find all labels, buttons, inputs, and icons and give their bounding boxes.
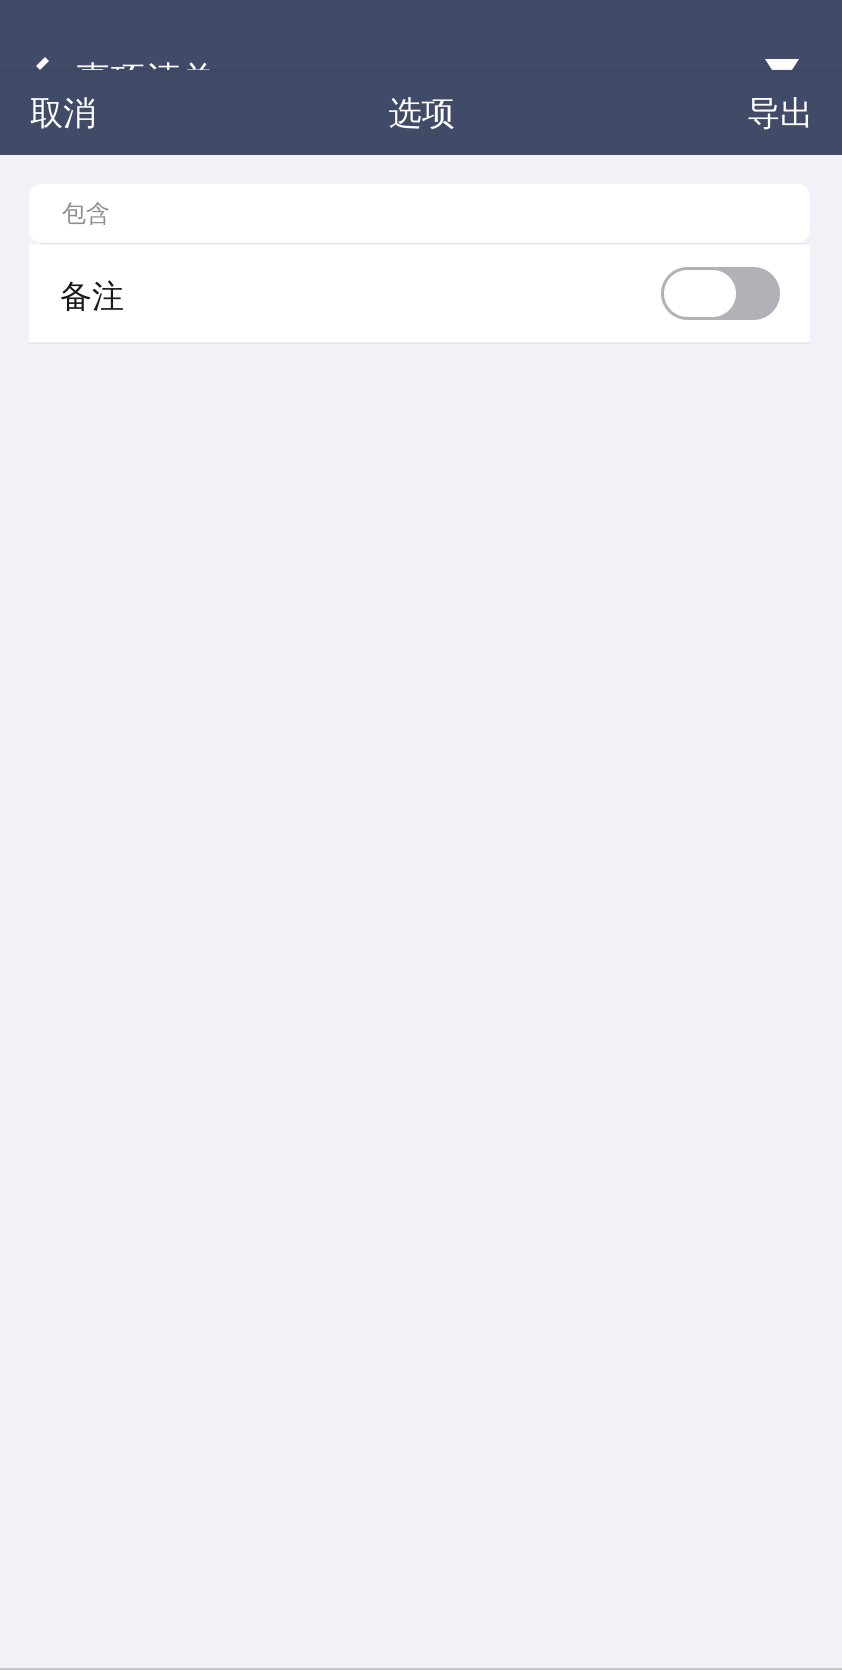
staticText: 包含 — [62, 199, 110, 228]
button[interactable]: 取消 — [0, 70, 114, 155]
staticText: 事项清单 — [76, 58, 216, 101]
staticText: 备注 — [60, 277, 124, 316]
staticText: 导出 — [747, 93, 813, 134]
staticText: 取消 — [30, 93, 96, 134]
staticText: 选项 — [388, 93, 454, 134]
button[interactable]: 更多 — [765, 0, 842, 70]
button[interactable]: 包含 — [29, 184, 810, 243]
button[interactable]: 备注 — [29, 244, 810, 342]
button[interactable]: 导出 — [729, 70, 842, 155]
